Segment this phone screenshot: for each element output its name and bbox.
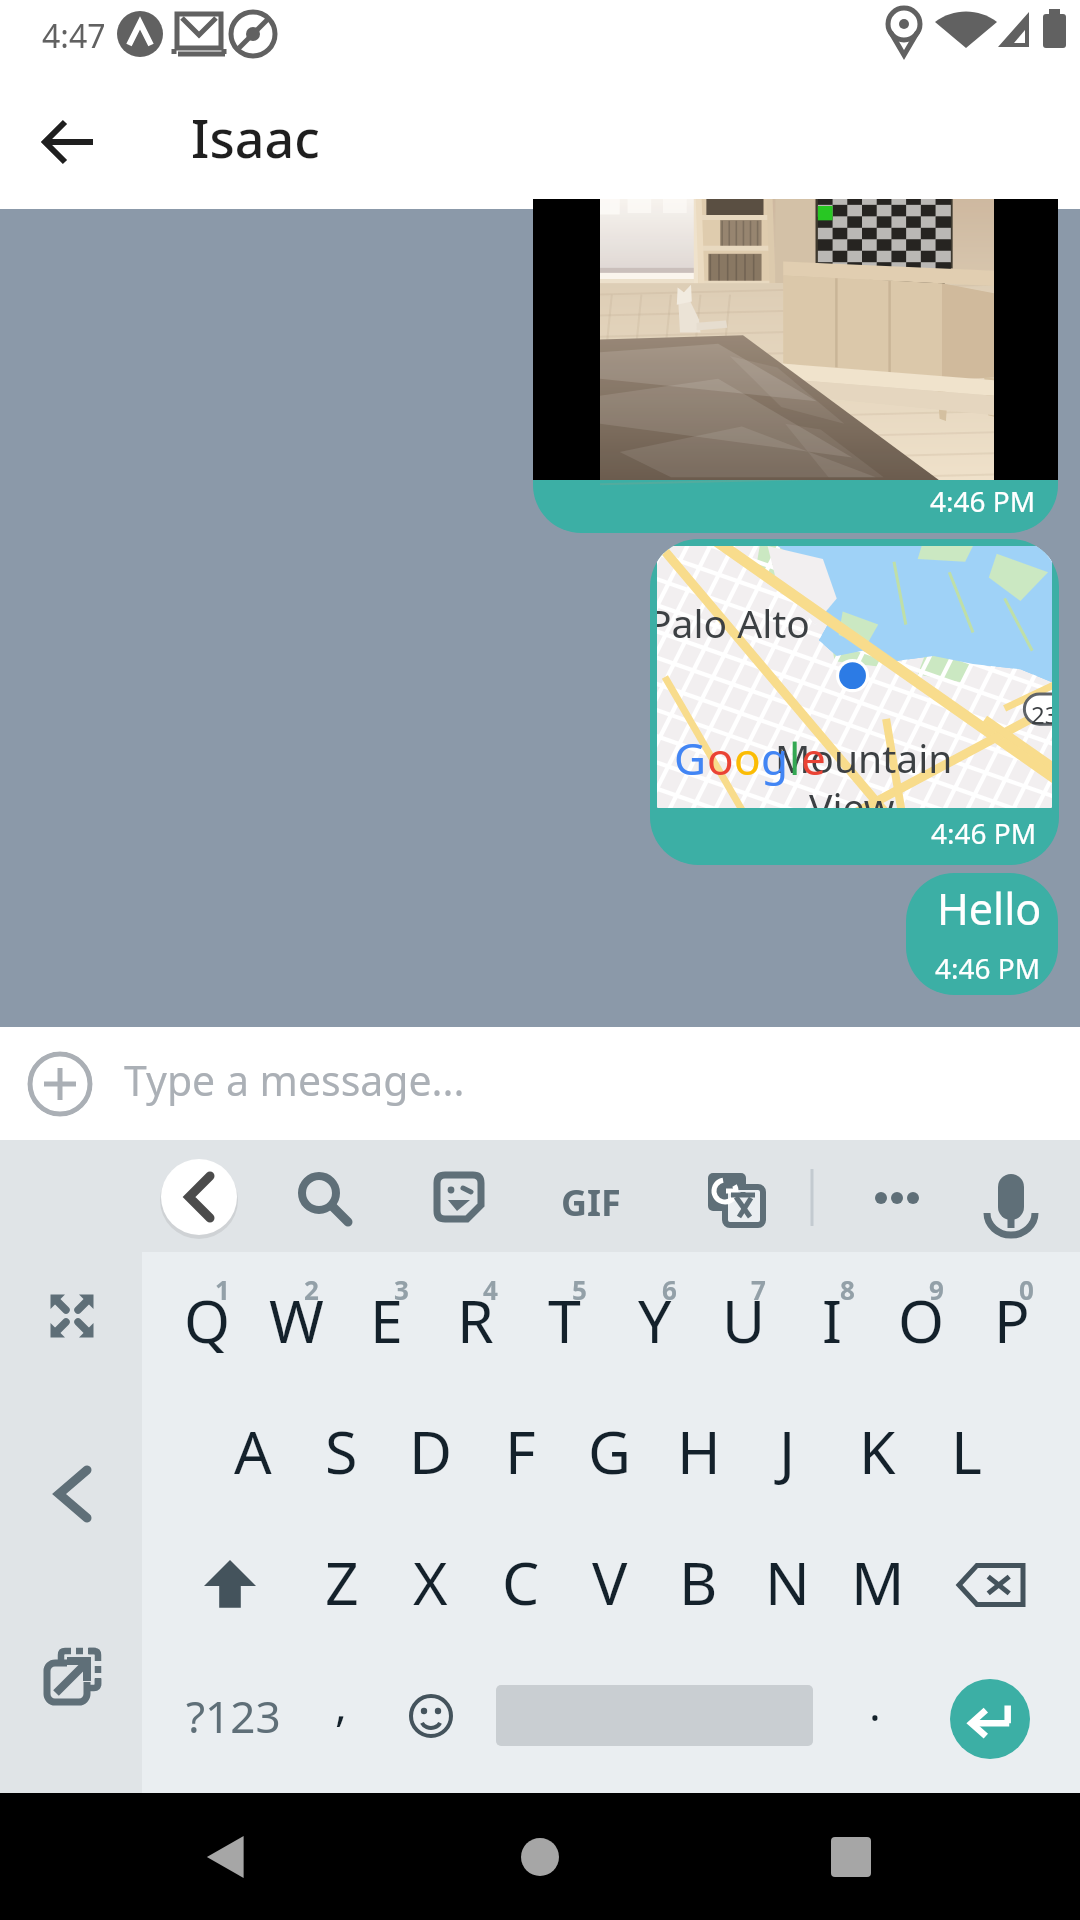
button[interactable]: Q bbox=[163, 1254, 252, 1385]
button[interactable]: T bbox=[520, 1254, 609, 1385]
button[interactable]: H bbox=[654, 1385, 743, 1516]
staticText: C bbox=[502, 1542, 540, 1622]
button[interactable]: Y bbox=[610, 1254, 699, 1385]
staticText: F bbox=[505, 1411, 536, 1491]
button[interactable]: Backspace bbox=[922, 1519, 1056, 1650]
button[interactable]: G bbox=[565, 1385, 654, 1516]
button[interactable]: V bbox=[565, 1516, 654, 1647]
staticText: L bbox=[951, 1411, 982, 1491]
staticText: P bbox=[994, 1280, 1030, 1360]
staticText: Type a message... bbox=[124, 1052, 465, 1108]
staticText: Z bbox=[325, 1542, 359, 1622]
button[interactable]: N bbox=[743, 1516, 832, 1647]
button[interactable]: S bbox=[297, 1385, 386, 1516]
staticText: 5 bbox=[572, 1272, 587, 1307]
staticText: A bbox=[234, 1411, 272, 1491]
staticText: U bbox=[722, 1280, 766, 1360]
button[interactable]: Home bbox=[495, 1812, 585, 1902]
staticText: 1 bbox=[215, 1272, 230, 1307]
button[interactable]: J bbox=[743, 1385, 832, 1516]
button[interactable]: GIF bbox=[547, 1156, 629, 1238]
button[interactable]: Close keyboard toolbar bbox=[161, 1159, 237, 1235]
button[interactable]: A bbox=[208, 1385, 297, 1516]
button[interactable]: D bbox=[386, 1385, 475, 1516]
button[interactable]: Z bbox=[297, 1516, 386, 1647]
button[interactable]: P bbox=[967, 1254, 1056, 1385]
button[interactable]: Stickers bbox=[417, 1156, 499, 1238]
staticText: 4:46 PM bbox=[931, 814, 1037, 852]
button[interactable]: Add attachment bbox=[27, 1051, 93, 1117]
button[interactable]: L bbox=[922, 1385, 1011, 1516]
staticText: 9 bbox=[929, 1272, 944, 1307]
button[interactable]: Hello bbox=[906, 873, 1058, 995]
button[interactable]: C bbox=[476, 1516, 565, 1647]
staticText: E bbox=[370, 1280, 403, 1360]
button[interactable]: R bbox=[431, 1254, 520, 1385]
button[interactable]: Search bbox=[279, 1156, 361, 1238]
staticText: Q bbox=[184, 1280, 231, 1360]
staticText: 2 bbox=[304, 1272, 319, 1307]
button[interactable]: 4:46 PM bbox=[533, 199, 1058, 533]
staticText: T bbox=[548, 1280, 581, 1360]
staticText: ?123 bbox=[186, 1686, 281, 1746]
staticText: 0 bbox=[1019, 1272, 1034, 1307]
staticText: D bbox=[409, 1411, 453, 1491]
staticText: W bbox=[269, 1280, 324, 1360]
staticText: 6 bbox=[662, 1272, 677, 1307]
staticText: Mountain bbox=[775, 731, 953, 784]
staticText: Palo Alto bbox=[657, 596, 810, 649]
button[interactable]: I bbox=[788, 1254, 877, 1385]
button[interactable]: U bbox=[699, 1254, 788, 1385]
button[interactable]: , bbox=[306, 1650, 376, 1781]
button[interactable]: X bbox=[386, 1516, 475, 1647]
button[interactable]: Shift bbox=[163, 1519, 297, 1650]
button[interactable]: Back bbox=[20, 94, 116, 190]
staticText: e bbox=[801, 728, 826, 788]
button[interactable]: 23 bbox=[650, 539, 1059, 865]
button[interactable]: Recent apps bbox=[806, 1812, 896, 1902]
button[interactable]: B bbox=[654, 1516, 743, 1647]
staticText: 4:47 bbox=[42, 14, 106, 58]
staticText: V bbox=[592, 1542, 628, 1622]
staticText: 4:46 PM bbox=[935, 949, 1041, 987]
staticText: M bbox=[851, 1542, 905, 1622]
button[interactable]: K bbox=[833, 1385, 922, 1516]
staticText: O bbox=[898, 1280, 945, 1360]
staticText: o bbox=[734, 728, 761, 788]
staticText: X bbox=[413, 1542, 448, 1622]
button[interactable]: Add attachment bbox=[0, 1027, 1080, 1140]
button[interactable]: . bbox=[840, 1650, 910, 1781]
staticText: I bbox=[822, 1280, 843, 1360]
button[interactable]: Voice input bbox=[970, 1156, 1052, 1238]
staticText: G bbox=[588, 1411, 631, 1491]
button[interactable]: Move keyboard left bbox=[30, 1452, 114, 1536]
button[interactable]: Floating keyboard bbox=[30, 1622, 114, 1706]
button[interactable]: M bbox=[833, 1516, 922, 1647]
button[interactable]: Enter bbox=[950, 1679, 1030, 1759]
button[interactable]: Resize keyboard bbox=[30, 1274, 114, 1358]
staticText: K bbox=[859, 1411, 896, 1491]
staticText: S bbox=[325, 1411, 358, 1491]
staticText: R bbox=[457, 1280, 494, 1360]
button[interactable]: W bbox=[252, 1254, 341, 1385]
button[interactable]: Emoji bbox=[392, 1650, 470, 1781]
button[interactable]: ?123 bbox=[160, 1650, 306, 1781]
staticText: G bbox=[674, 728, 707, 788]
staticText: N bbox=[765, 1542, 810, 1622]
staticText: , bbox=[335, 1674, 347, 1734]
button[interactable]: O bbox=[877, 1254, 966, 1385]
button[interactable]: More options bbox=[857, 1156, 939, 1238]
staticText: 3 bbox=[394, 1272, 409, 1307]
button[interactable]: Back bbox=[165, 1812, 255, 1902]
button[interactable]: E bbox=[342, 1254, 431, 1385]
button[interactable]: F bbox=[476, 1385, 565, 1516]
button[interactable]: Translate bbox=[687, 1156, 769, 1238]
staticText: J bbox=[779, 1411, 796, 1491]
staticText: g bbox=[761, 728, 789, 788]
staticText: Y bbox=[638, 1280, 672, 1360]
staticText: Hello bbox=[937, 879, 1042, 938]
staticText: GIF bbox=[561, 1178, 621, 1227]
staticText: 23 bbox=[1031, 698, 1052, 731]
staticText: View bbox=[809, 780, 895, 808]
